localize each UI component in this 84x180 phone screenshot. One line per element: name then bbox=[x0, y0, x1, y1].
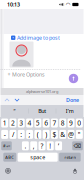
button[interactable]: , bbox=[30, 141, 37, 150]
button[interactable]: - bbox=[1, 130, 8, 139]
button[interactable]: 4 bbox=[26, 118, 33, 127]
button[interactable]: Dictation bbox=[71, 167, 84, 175]
button[interactable]: ) bbox=[43, 130, 50, 139]
staticText: 10:13 bbox=[7, 1, 20, 8]
button[interactable]: / bbox=[9, 130, 16, 139]
staticText: / bbox=[12, 130, 14, 139]
staticText: I’m bbox=[66, 107, 74, 115]
button[interactable]: Add image to post bbox=[0, 34, 83, 41]
button[interactable]: I’m bbox=[56, 105, 83, 116]
staticText: , bbox=[33, 141, 35, 150]
button[interactable]: Previous field bbox=[0, 95, 11, 104]
staticText: 4 bbox=[28, 119, 32, 127]
staticText: ◠ bbox=[66, 1, 71, 8]
staticText: “ bbox=[14, 107, 16, 115]
button[interactable]: 3 bbox=[18, 118, 25, 127]
staticText: return bbox=[64, 154, 75, 160]
button[interactable]: Done bbox=[66, 96, 83, 104]
staticText: ! bbox=[49, 141, 51, 150]
staticText: space bbox=[30, 154, 45, 161]
staticText: $ bbox=[52, 130, 56, 139]
button[interactable]: But bbox=[29, 105, 56, 116]
button[interactable]: “ bbox=[1, 105, 28, 116]
button[interactable]: 8 bbox=[59, 118, 66, 127]
staticText: alphaverse101.org bbox=[26, 89, 58, 94]
staticText: " bbox=[78, 130, 81, 139]
button[interactable]: Send bbox=[68, 73, 83, 84]
button[interactable]: Switch keyboard bbox=[0, 167, 12, 175]
staticText: ABC bbox=[5, 154, 14, 160]
staticText: @ bbox=[68, 130, 74, 139]
staticText: 2 bbox=[11, 119, 15, 127]
staticText: 6 bbox=[44, 119, 48, 127]
button[interactable]: ’ bbox=[55, 141, 62, 150]
button[interactable]: return bbox=[59, 153, 81, 162]
staticText: Add image to post bbox=[17, 34, 60, 41]
staticText: 8 bbox=[61, 119, 65, 127]
button[interactable]: #+= bbox=[1, 141, 12, 150]
staticText: & bbox=[60, 130, 65, 139]
staticText: ) bbox=[45, 130, 47, 139]
staticText: 7 bbox=[52, 119, 56, 127]
button[interactable]: 6 bbox=[43, 118, 50, 127]
button[interactable]: ; bbox=[26, 130, 33, 139]
button[interactable]: & bbox=[59, 130, 66, 139]
button[interactable]: . bbox=[22, 141, 29, 150]
button[interactable]: ABC bbox=[3, 153, 16, 162]
button[interactable]: 9 bbox=[68, 118, 74, 127]
staticText: ( bbox=[37, 130, 39, 139]
staticText: 5 bbox=[36, 119, 40, 127]
button[interactable]: $ bbox=[51, 130, 58, 139]
staticText: ? bbox=[40, 141, 43, 150]
staticText: Done bbox=[66, 96, 79, 104]
staticText: More Options bbox=[12, 71, 45, 78]
button[interactable]: Next field bbox=[11, 95, 21, 104]
button[interactable]: 1 bbox=[1, 118, 8, 127]
staticText: : bbox=[20, 130, 22, 139]
button[interactable]: : bbox=[18, 130, 25, 139]
button[interactable]: 0 bbox=[76, 118, 83, 127]
button[interactable]: 7 bbox=[51, 118, 58, 127]
staticText: ; bbox=[29, 130, 31, 139]
staticText: #+= bbox=[3, 143, 10, 148]
staticText: . bbox=[24, 141, 26, 150]
staticText: ⌫ bbox=[73, 143, 81, 149]
button[interactable]: 2 bbox=[9, 118, 16, 127]
button[interactable]: space bbox=[18, 153, 58, 162]
button[interactable]: @ bbox=[68, 130, 74, 139]
button[interactable]: ⌫ bbox=[72, 141, 83, 150]
staticText: ’ bbox=[58, 141, 59, 150]
staticText: + bbox=[7, 71, 10, 78]
staticText: 9 bbox=[69, 119, 73, 127]
button[interactable]: + bbox=[0, 70, 83, 79]
staticText: 0 bbox=[77, 119, 81, 127]
staticText: 1 bbox=[3, 119, 7, 127]
button[interactable]: 5 bbox=[34, 118, 41, 127]
button[interactable]: ( bbox=[34, 130, 41, 139]
button[interactable]: ! bbox=[47, 141, 54, 150]
staticText: 3 bbox=[19, 119, 23, 127]
staticText: But bbox=[38, 107, 46, 115]
button[interactable]: ? bbox=[38, 141, 45, 150]
button[interactable]: " bbox=[76, 130, 83, 139]
staticText: - bbox=[4, 130, 6, 139]
